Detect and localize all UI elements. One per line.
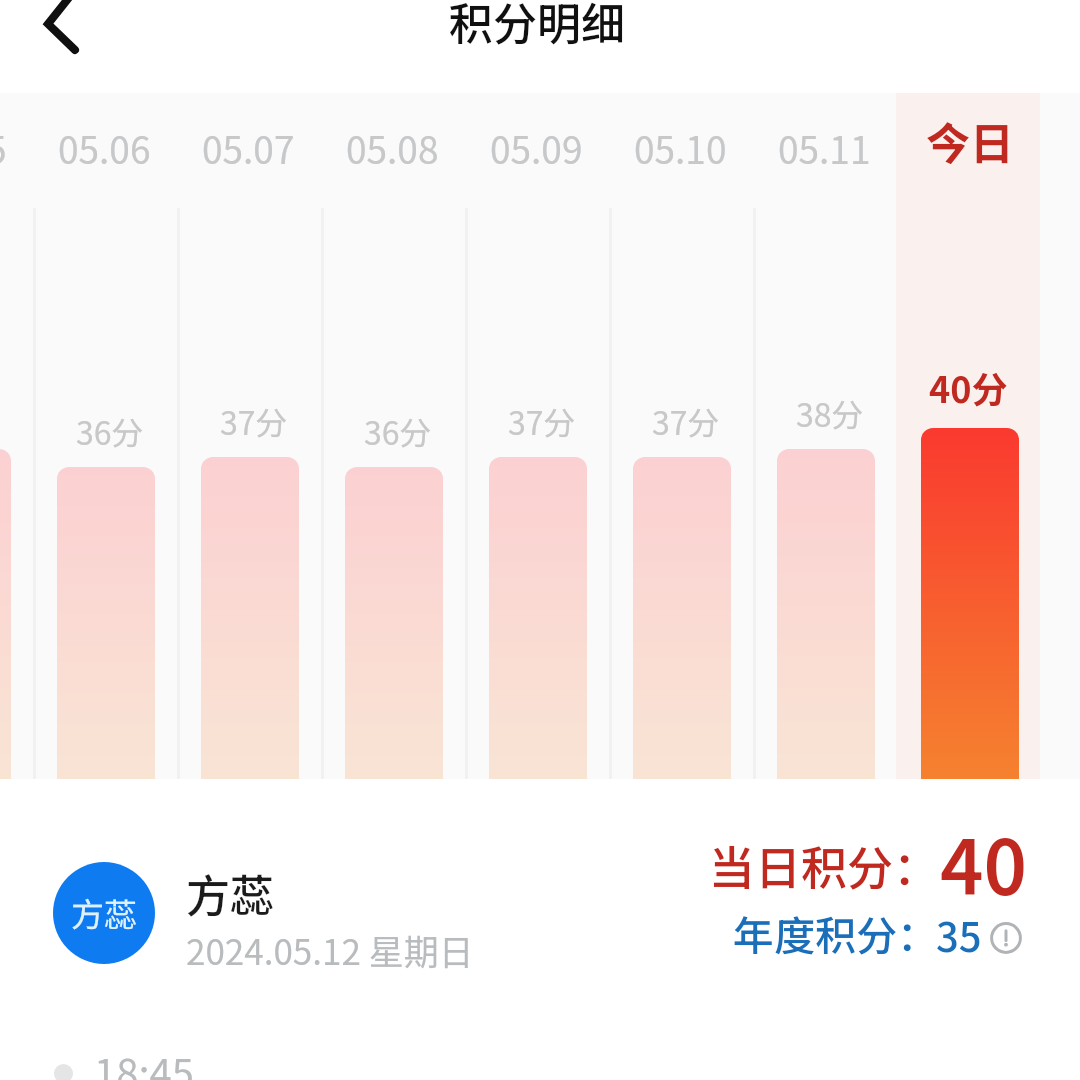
button[interactable] xyxy=(0,840,1080,980)
button[interactable]: 05.06 36分 xyxy=(34,93,178,779)
staticText: 2024.05.12 星期日 xyxy=(186,924,474,975)
staticText: 05.06 xyxy=(58,121,151,175)
staticText: 37分 xyxy=(652,398,720,444)
button[interactable]: 05.10 37分 xyxy=(610,93,754,779)
staticText: 05.10 xyxy=(634,121,727,175)
staticText: 35 xyxy=(936,906,982,964)
staticText: 05.11 xyxy=(778,121,871,175)
staticText: 36分 xyxy=(76,408,144,454)
button[interactable]: Back xyxy=(0,0,110,80)
staticText: 今日 xyxy=(926,109,1014,173)
staticText: 40分 xyxy=(929,361,1008,413)
staticText: 38分 xyxy=(796,390,864,436)
staticText: 年度积分： xyxy=(733,903,938,962)
staticText: 方蕊 xyxy=(186,861,274,925)
button[interactable]: Yearly points info xyxy=(989,921,1022,954)
button[interactable]: 05.09 37分 xyxy=(466,93,610,779)
button[interactable]: 05.08 36分 xyxy=(322,93,466,779)
staticText: 40 xyxy=(940,808,1028,917)
staticText: 积分明细 xyxy=(449,0,625,53)
button[interactable]: 今日 40分 xyxy=(898,93,1042,779)
staticText: 05.05 xyxy=(0,121,7,175)
staticText: 36分 xyxy=(364,408,432,454)
staticText: 37分 xyxy=(508,398,576,444)
staticText: 当日积分： xyxy=(709,832,939,899)
button[interactable]: 05.07 37分 xyxy=(178,93,322,779)
button[interactable]: 05.11 38分 xyxy=(754,93,898,779)
button[interactable] xyxy=(0,1030,1080,1080)
staticText: 05.09 xyxy=(490,121,583,175)
staticText: 05.08 xyxy=(346,121,439,175)
staticText: 37分 xyxy=(220,398,288,444)
staticText: 18:45 xyxy=(94,1042,194,1080)
button[interactable]: 05.05 38分 xyxy=(0,93,34,779)
staticText: 05.07 xyxy=(202,121,295,175)
staticText: 方蕊 xyxy=(71,889,137,937)
